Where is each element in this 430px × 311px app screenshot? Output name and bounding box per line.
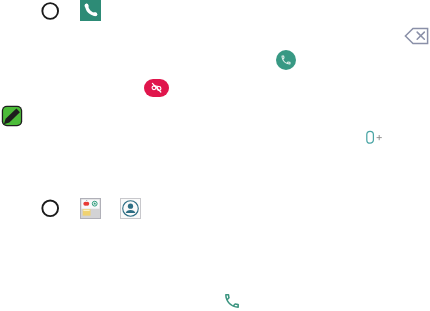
button[interactable]: Folder [80, 198, 101, 219]
button[interactable]: Backspace [404, 27, 429, 45]
button[interactable]: Call [276, 50, 296, 70]
button[interactable]: Edit [1, 105, 23, 127]
button[interactable]: Dial [223, 291, 241, 309]
button[interactable]: Record 2 [41, 199, 60, 218]
button[interactable]: Phone app [80, 0, 101, 21]
button[interactable]: End call [144, 79, 169, 97]
button[interactable]: Record [41, 1, 60, 20]
button[interactable]: Contacts [120, 198, 141, 219]
button[interactable]: Zero plus [360, 124, 388, 146]
